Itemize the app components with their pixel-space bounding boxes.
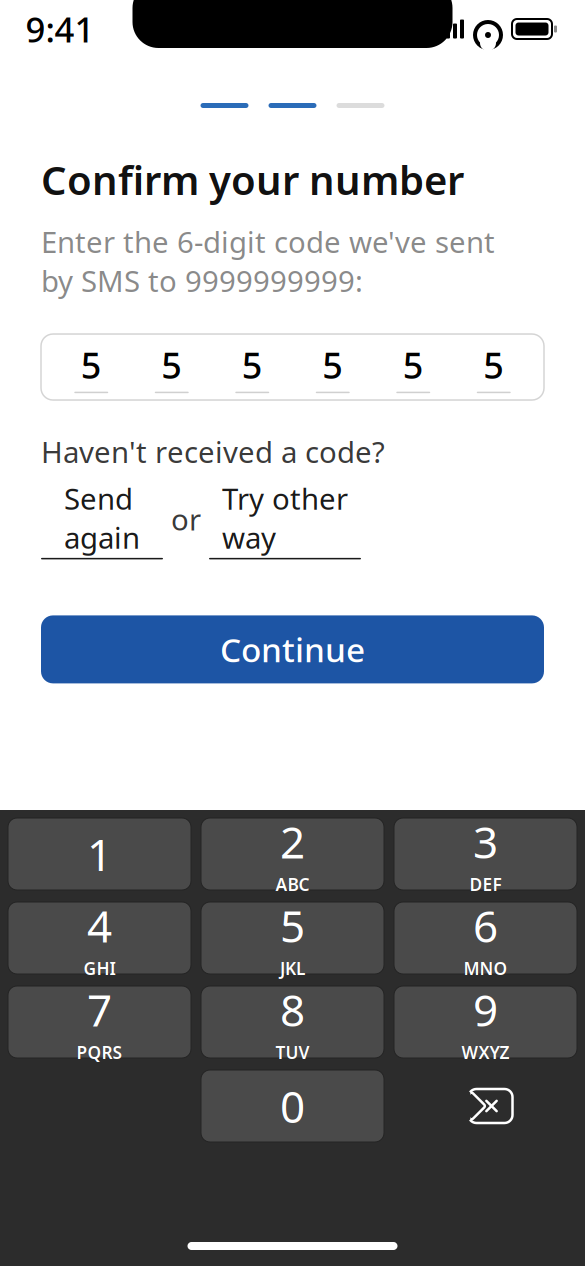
button[interactable]: 9 [394, 986, 577, 1058]
staticText: 5 [403, 341, 424, 389]
staticText: 1 [87, 825, 112, 883]
staticText: 6 [473, 896, 498, 955]
staticText: 5 [161, 341, 182, 389]
staticText: MNO [463, 957, 507, 980]
button[interactable]: Try other way [209, 479, 361, 559]
staticText: 4 [87, 896, 112, 955]
staticText: Confirm your number [41, 153, 464, 206]
staticText: ABC [275, 873, 309, 896]
button[interactable]: 6-digit verification code [41, 334, 544, 400]
button[interactable]: Delete [394, 1070, 577, 1142]
button[interactable]: Continue [41, 615, 544, 683]
staticText: Enter the 6-digit code we've sent by SMS… [41, 222, 495, 300]
staticText: 7 [87, 980, 112, 1039]
staticText: Continue [220, 627, 365, 672]
staticText: 9 [473, 980, 498, 1039]
staticText: Send again [64, 479, 140, 557]
staticText: DEF [469, 873, 501, 896]
staticText: 0 [280, 1077, 305, 1135]
button[interactable]: 5 [201, 902, 384, 974]
staticText: 3 [473, 812, 498, 871]
button[interactable]: 2 [201, 818, 384, 890]
staticText: 2 [280, 812, 305, 871]
staticText: JKL [280, 957, 305, 980]
staticText: WXYZ [461, 1041, 509, 1064]
button[interactable]: 0 [201, 1070, 384, 1142]
staticText: TUV [275, 1041, 309, 1064]
button[interactable]: 3 [394, 818, 577, 890]
button[interactable]: 4 [8, 902, 191, 974]
button[interactable]: Send again [41, 479, 163, 559]
button[interactable]: 7 [8, 986, 191, 1058]
staticText: 5 [280, 896, 305, 955]
button[interactable]: 6 [394, 902, 577, 974]
staticText: GHI [83, 957, 115, 980]
staticText: Haven't received a code? [41, 432, 385, 471]
staticText: 9:41 [25, 6, 94, 52]
button[interactable]: 8 [201, 986, 384, 1058]
staticText: 5 [242, 341, 263, 389]
staticText: PQRS [76, 1041, 122, 1064]
staticText: Try other way [222, 479, 348, 557]
staticText: 8 [280, 980, 305, 1039]
staticText: 5 [81, 341, 102, 389]
staticText: 5 [483, 341, 504, 389]
staticText: or [163, 500, 209, 539]
button[interactable]: 1 [8, 818, 191, 890]
staticText: 5 [322, 341, 343, 389]
